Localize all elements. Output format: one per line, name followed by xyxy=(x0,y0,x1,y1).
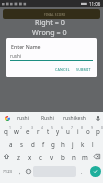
staticText: . xyxy=(81,168,83,175)
staticText: rushi xyxy=(17,115,29,122)
button[interactable]: ?123 xyxy=(0,166,15,177)
staticText: e xyxy=(26,127,30,135)
staticText: d xyxy=(31,140,35,148)
button[interactable]: x xyxy=(24,150,35,163)
staticText: 8 xyxy=(81,125,83,130)
button[interactable]: j xyxy=(68,137,78,150)
button[interactable]: , xyxy=(15,166,24,177)
staticText: 2 xyxy=(20,125,22,130)
staticText: j xyxy=(72,140,74,148)
staticText: s xyxy=(20,140,23,148)
button[interactable]: g xyxy=(48,137,58,150)
staticText: 3 xyxy=(31,125,33,130)
staticText: , xyxy=(19,168,21,175)
button[interactable]: q xyxy=(0,124,11,137)
staticText: u xyxy=(66,127,70,135)
staticText: v xyxy=(50,153,54,161)
button[interactable]: u xyxy=(63,124,73,137)
staticText: i xyxy=(77,127,79,135)
staticText: m xyxy=(82,153,88,161)
button[interactable]: v xyxy=(46,150,57,163)
button[interactable]: c xyxy=(35,150,46,163)
staticText: a xyxy=(9,140,13,148)
staticText: Right = 0 xyxy=(35,17,65,27)
staticText: p xyxy=(96,127,100,135)
button[interactable]: z xyxy=(13,150,24,163)
button[interactable]: . xyxy=(76,166,88,177)
button[interactable]: a xyxy=(5,137,16,150)
staticText: o xyxy=(86,127,90,135)
staticText: 5 xyxy=(51,125,53,130)
staticText: w xyxy=(14,127,19,135)
staticText: h xyxy=(61,140,65,148)
button[interactable]: CANCEL xyxy=(52,65,73,74)
button[interactable]: o xyxy=(83,124,93,137)
staticText: r xyxy=(37,127,40,135)
staticText: 6 xyxy=(61,125,63,130)
button[interactable]: n xyxy=(68,150,79,163)
staticText: q xyxy=(4,127,8,135)
staticText: FINAL SCORE xyxy=(44,13,66,17)
button[interactable]: y xyxy=(53,124,63,137)
staticText: t xyxy=(47,127,50,135)
staticText: 11:06 xyxy=(89,1,101,7)
button[interactable]: Backspace xyxy=(90,150,103,163)
staticText: y xyxy=(56,127,60,135)
staticText: Wrong = 0 xyxy=(32,27,67,37)
staticText: f xyxy=(42,140,45,148)
staticText: rushikesh xyxy=(63,115,86,122)
button[interactable]: i xyxy=(73,124,83,137)
button[interactable]: SUBMIT xyxy=(73,65,94,74)
staticText: Rushi xyxy=(41,115,54,122)
staticText: z xyxy=(17,153,20,161)
button[interactable]: f xyxy=(38,137,48,150)
staticText: g xyxy=(51,140,55,148)
staticText: SUBMIT xyxy=(76,67,91,72)
button[interactable]: e xyxy=(22,124,33,137)
button[interactable]: w xyxy=(11,124,22,137)
button[interactable]: k xyxy=(78,137,88,150)
button[interactable]: p xyxy=(93,124,103,137)
staticText: 0 xyxy=(101,125,103,130)
staticText: rushi xyxy=(10,53,21,59)
button[interactable]: l xyxy=(88,137,98,150)
button[interactable]: t xyxy=(43,124,53,137)
staticText: Enter Name xyxy=(11,43,41,50)
staticText: n xyxy=(72,153,76,161)
button[interactable]: s xyxy=(16,137,27,150)
staticText: 4 xyxy=(41,125,43,130)
button[interactable]: b xyxy=(57,150,68,163)
button[interactable]: r xyxy=(33,124,43,137)
staticText: ?123 xyxy=(3,169,13,175)
button[interactable]: d xyxy=(27,137,38,150)
staticText: 9 xyxy=(91,125,93,130)
staticText: x xyxy=(28,153,32,161)
staticText: b xyxy=(61,153,65,161)
button[interactable]: FINAL SCORE xyxy=(3,9,100,19)
staticText: CANCEL xyxy=(55,67,70,72)
button[interactable]: Enter xyxy=(88,166,103,177)
button[interactable]: m xyxy=(79,150,90,163)
button[interactable]: Voice input xyxy=(92,112,103,124)
button[interactable]: Shift xyxy=(0,150,13,163)
button[interactable]: h xyxy=(58,137,68,150)
button[interactable]: Emoji xyxy=(24,166,33,177)
staticText: k xyxy=(81,140,85,148)
staticText: 7 xyxy=(71,125,73,130)
staticText: l xyxy=(92,140,94,148)
staticText: 1 xyxy=(9,125,11,130)
staticText: c xyxy=(39,153,42,161)
